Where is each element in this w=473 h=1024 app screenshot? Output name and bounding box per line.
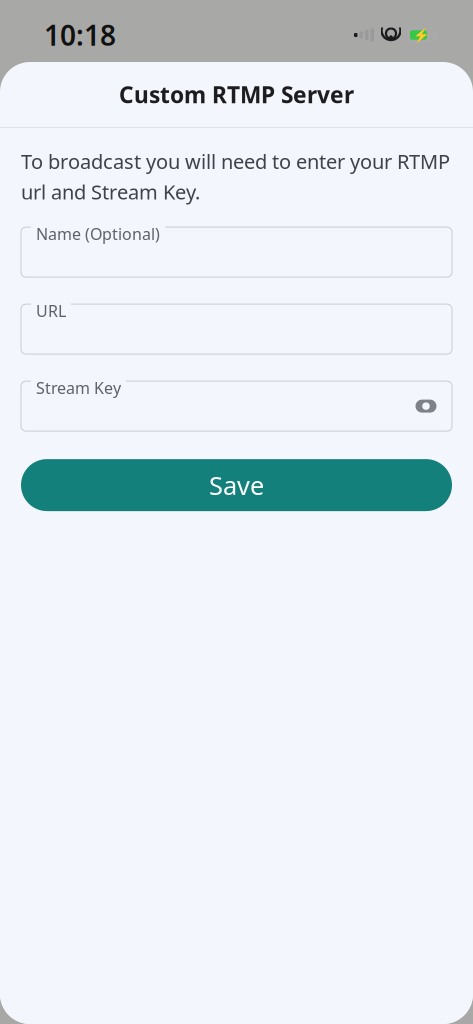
staticText: 10:18 bbox=[44, 16, 116, 54]
staticText: URL bbox=[36, 300, 66, 321]
button[interactable]: URL bbox=[0, 304, 473, 354]
button[interactable]: Name (Optional) bbox=[0, 227, 473, 277]
staticText: Custom RTMP Server bbox=[119, 79, 354, 109]
staticText: Save bbox=[209, 468, 264, 502]
button[interactable]: Save bbox=[0, 459, 473, 511]
staticText: Stream Key bbox=[36, 377, 121, 398]
staticText: ⚡ bbox=[412, 27, 429, 43]
staticText: Name (Optional) bbox=[36, 223, 160, 244]
staticText: To broadcast you will need to enter your… bbox=[21, 148, 450, 205]
button[interactable]: Stream Key bbox=[0, 381, 473, 431]
